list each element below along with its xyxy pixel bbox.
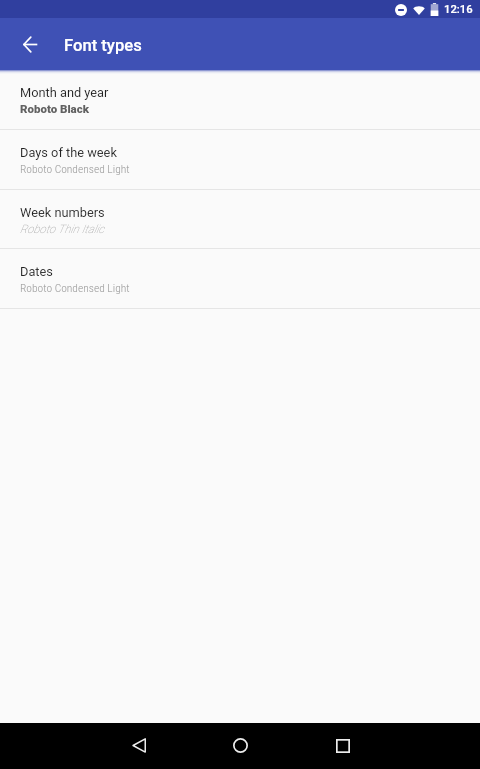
button[interactable]: Month and year bbox=[0, 70, 480, 130]
button[interactable]: Home bbox=[218, 723, 263, 768]
button[interactable]: Week numbers bbox=[0, 190, 480, 249]
staticText: Days of the week bbox=[20, 145, 117, 160]
button[interactable]: Back bbox=[116, 723, 161, 768]
staticText: Roboto Condensed Light bbox=[20, 162, 130, 175]
button[interactable]: Dates bbox=[0, 249, 480, 309]
button[interactable]: Back bbox=[10, 24, 50, 64]
staticText: Roboto Condensed Light bbox=[20, 281, 130, 294]
staticText: Dates bbox=[20, 264, 53, 279]
staticText: Roboto Thin Italic bbox=[20, 222, 105, 235]
staticText: 12:16 bbox=[444, 3, 473, 16]
staticText: Font types bbox=[64, 36, 142, 55]
staticText: Week numbers bbox=[20, 205, 105, 220]
button[interactable]: Recent apps bbox=[320, 723, 365, 768]
button[interactable]: Days of the week bbox=[0, 130, 480, 190]
staticText: Month and year bbox=[20, 85, 109, 100]
staticText: Roboto Black bbox=[20, 102, 89, 115]
